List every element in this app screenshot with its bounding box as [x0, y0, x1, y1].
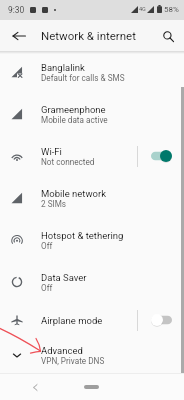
staticText: 58%: [164, 5, 179, 14]
staticText: Advanced: [41, 345, 83, 356]
button[interactable]: Search: [157, 25, 179, 47]
staticText: Banglalink: [41, 62, 85, 73]
button[interactable]: Back: [27, 379, 43, 395]
staticText: Not connected: [41, 157, 95, 167]
staticText: Mobile network: [41, 188, 107, 199]
staticText: Default for calls & SMS: [41, 73, 125, 83]
staticText: 9:30: [8, 5, 25, 15]
button[interactable]: Advanced: [0, 337, 184, 373]
staticText: Hotspot & tethering: [41, 230, 124, 241]
button[interactable]: Airplane mode: [0, 303, 137, 337]
staticText: Off: [41, 283, 53, 293]
button[interactable]: Hotspot & tethering: [0, 219, 184, 261]
staticText: Airplane mode: [41, 315, 103, 326]
button[interactable]: Home: [84, 385, 99, 389]
button[interactable]: Back: [7, 24, 31, 48]
button[interactable]: Data Saver: [0, 261, 184, 303]
staticText: Mobile data active: [41, 115, 108, 125]
button[interactable]: Wi-Fi: [0, 135, 137, 177]
staticText: Data Saver: [41, 272, 87, 283]
staticText: Grameenphone: [41, 104, 106, 115]
staticText: Network & internet: [41, 29, 136, 42]
button[interactable]: Grameenphone: [0, 93, 184, 135]
staticText: Off: [41, 241, 53, 251]
button[interactable]: Mobile network: [0, 177, 184, 219]
button[interactable]: Airplane mode off: [138, 303, 184, 337]
staticText: 4G: [139, 6, 146, 12]
button[interactable]: Wi-Fi on: [138, 135, 184, 177]
staticText: Wi-Fi: [41, 146, 62, 157]
staticText: VPN, Private DNS: [41, 356, 105, 366]
staticText: 2 SIMs: [41, 199, 67, 209]
button[interactable]: Banglalink: [0, 51, 184, 93]
